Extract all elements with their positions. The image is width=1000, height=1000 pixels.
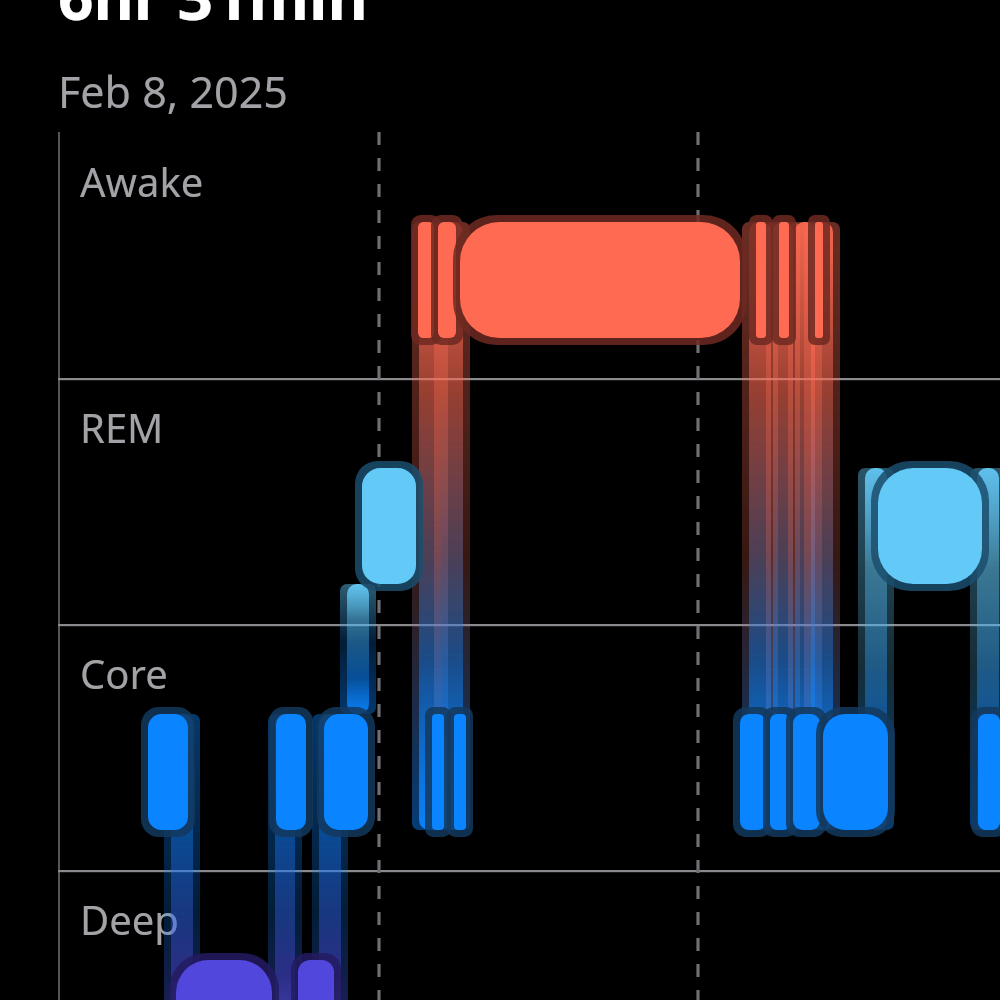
button[interactable]: Sleep stages chart for Feb 8, 2025 bbox=[0, 0, 1000, 1000]
